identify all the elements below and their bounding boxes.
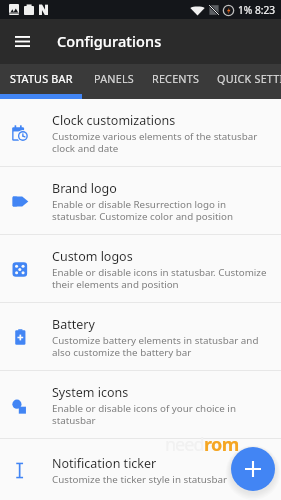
button[interactable]: RECENTS (146, 64, 206, 99)
button[interactable]: Open navigation drawer (7, 27, 37, 57)
staticText: System icons (52, 384, 129, 401)
staticText: Configurations (57, 31, 162, 51)
staticText: need (165, 432, 204, 457)
staticText: Brand logo (52, 180, 117, 197)
staticText: STATUS BAR (10, 71, 73, 86)
button[interactable]: Clock customizations (0, 99, 281, 166)
button[interactable]: Brand logo (0, 167, 281, 234)
staticText: Enable or disable Resurrection logo in s… (52, 198, 270, 223)
staticText: QUICK SETTINGS (217, 71, 281, 86)
staticText: Customize battery elements in statusbar … (52, 334, 270, 359)
button[interactable]: Add (231, 447, 275, 491)
staticText: Customize various elements of the status… (52, 130, 270, 155)
button[interactable]: STATUS BAR (0, 64, 82, 99)
staticText: Customize the ticker style in statusbar (52, 473, 228, 486)
staticText: Enable or disable icons of your choice i… (52, 402, 270, 427)
staticText: PANELS (94, 71, 134, 86)
staticText: RECENTS (152, 71, 200, 86)
staticText: Battery (52, 316, 95, 333)
button[interactable]: System icons (0, 371, 281, 438)
button[interactable]: QUICK SETTINGS (206, 64, 281, 99)
staticText: Enable or disable icons in statusbar. Cu… (52, 266, 270, 291)
staticText: 1% 8:23 (238, 3, 276, 17)
staticText: rom (204, 432, 239, 457)
staticText: Notification ticker (52, 455, 157, 472)
button[interactable]: Battery (0, 303, 281, 370)
button[interactable]: Notification ticker (0, 439, 281, 500)
staticText: Clock customizations (52, 112, 176, 129)
button[interactable]: Custom logos (0, 235, 281, 302)
button[interactable]: PANELS (82, 64, 146, 99)
staticText: Custom logos (52, 248, 133, 265)
